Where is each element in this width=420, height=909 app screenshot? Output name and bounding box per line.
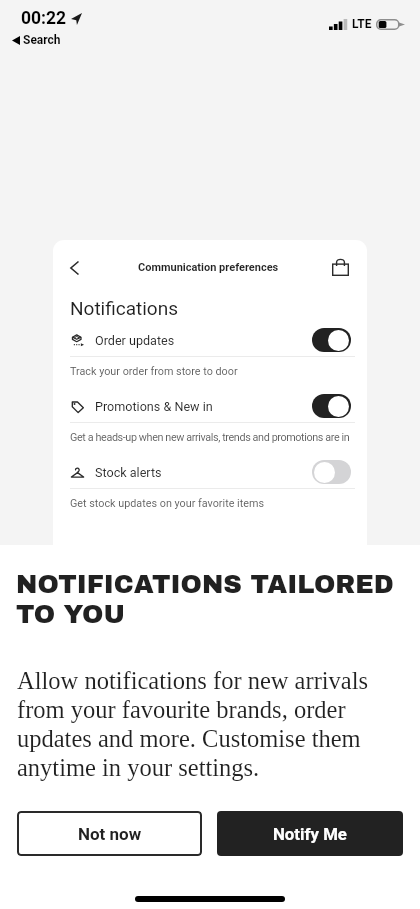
button[interactable]: Switch off	[312, 460, 351, 484]
staticText: Stock alerts	[95, 465, 162, 480]
staticText: 00:22	[21, 8, 67, 29]
button[interactable]: Not now	[17, 811, 202, 856]
button[interactable]: Order updates	[53, 323, 367, 357]
staticText: Promotions & New in	[95, 399, 213, 414]
staticText: Track your order from store to door	[70, 365, 360, 378]
staticText: Order updates	[95, 333, 175, 348]
staticText: Communication preferences	[138, 261, 279, 274]
staticText: Get stock updates on your favorite items	[70, 497, 360, 510]
button[interactable]: Shopping bag	[323, 250, 357, 284]
staticText: Not now	[78, 824, 142, 844]
staticText: Get a heads-up when new arrivals, trends…	[70, 431, 360, 444]
staticText: Notify Me	[273, 824, 347, 844]
staticText: Notifications	[70, 297, 179, 319]
button[interactable]: Notify Me	[217, 811, 403, 856]
staticText: Allow notifications for new arrivals fro…	[17, 667, 373, 782]
button[interactable]: Promotions & New in	[53, 389, 367, 423]
button[interactable]: Switch on	[312, 328, 351, 352]
staticText: Search	[23, 33, 61, 47]
button[interactable]: Back	[57, 251, 91, 285]
button[interactable]: Stock alerts	[53, 455, 367, 489]
staticText: LTE	[352, 17, 372, 31]
staticText: NOTIFICATIONS TAILORED TO YOU	[16, 570, 408, 628]
button[interactable]: Switch on	[312, 394, 351, 418]
